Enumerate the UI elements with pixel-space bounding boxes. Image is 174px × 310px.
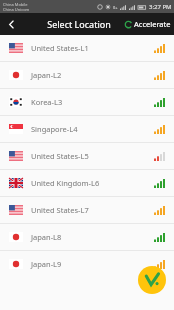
staticText: Korea-L3 bbox=[31, 97, 63, 107]
button[interactable]: Connect bbox=[138, 266, 166, 294]
button[interactable]: United States-L5 bbox=[0, 143, 174, 169]
staticText: United States-L1 bbox=[31, 43, 89, 53]
button[interactable]: Japan-L8 bbox=[0, 224, 174, 250]
button[interactable]: Singapore-L4 bbox=[0, 116, 174, 142]
staticText: Japan-L2 bbox=[31, 70, 62, 80]
button[interactable]: Back bbox=[0, 13, 22, 35]
staticText: United Kingdom-L6 bbox=[31, 178, 100, 188]
staticText: China Mobile bbox=[3, 2, 28, 7]
staticText: 3:27 PM bbox=[149, 3, 172, 11]
staticText: 0+ bbox=[113, 5, 118, 10]
staticText: Singapore-L4 bbox=[31, 124, 78, 134]
staticText: United States-L7 bbox=[31, 205, 89, 215]
button[interactable]: Korea-L3 bbox=[0, 89, 174, 115]
button[interactable]: Japan-L2 bbox=[0, 62, 174, 88]
button[interactable]: Japan-L9 bbox=[0, 251, 174, 277]
staticText: China Unicom bbox=[3, 7, 30, 12]
button[interactable]: United States-L1 bbox=[0, 35, 174, 61]
staticText: United States-L5 bbox=[31, 151, 89, 161]
button[interactable]: United States-L7 bbox=[0, 197, 174, 223]
button[interactable]: Accelerate bbox=[124, 19, 171, 29]
button[interactable]: United Kingdom-L6 bbox=[0, 170, 174, 196]
staticText: Japan-L9 bbox=[31, 259, 62, 269]
staticText: Japan-L8 bbox=[31, 232, 62, 242]
staticText: Select Location bbox=[47, 18, 111, 30]
staticText: Accelerate bbox=[134, 19, 171, 29]
